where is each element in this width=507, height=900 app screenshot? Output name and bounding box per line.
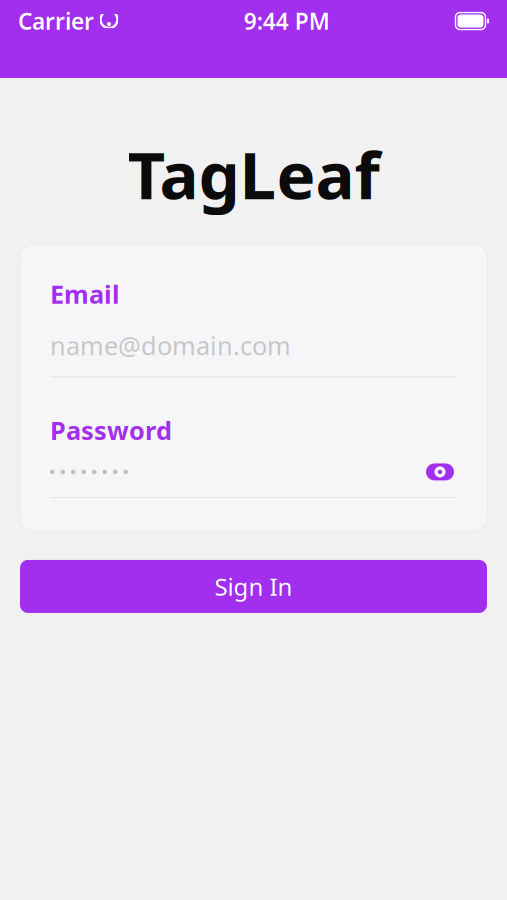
button[interactable]: Show password — [423, 459, 457, 485]
staticText: Sign In — [214, 570, 292, 602]
button[interactable]: Sign In — [20, 560, 487, 613]
staticText: name@domain.com — [50, 329, 291, 362]
staticText: 9:44 PM — [244, 6, 330, 36]
staticText: Password — [50, 413, 172, 447]
staticText: Email — [50, 277, 120, 311]
staticText: Carrier — [18, 6, 94, 36]
staticText: TagLeaf — [127, 131, 379, 217]
